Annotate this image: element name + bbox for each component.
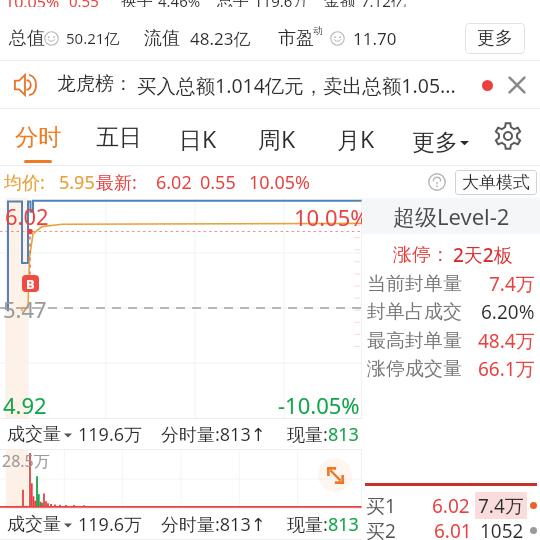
staticText: 119.6万 bbox=[254, 0, 308, 7]
staticText: 5.47 bbox=[3, 294, 47, 324]
button[interactable]: Settings bbox=[494, 122, 522, 150]
staticText: -10.05% bbox=[278, 390, 360, 420]
staticText: 6.02 bbox=[156, 170, 192, 195]
staticText: 6.02 bbox=[5, 201, 49, 231]
button[interactable]: 成交量 bbox=[7, 513, 72, 536]
staticText: 现量: bbox=[287, 422, 328, 447]
button[interactable]: Close bbox=[505, 73, 529, 97]
button[interactable]: 更多 bbox=[465, 23, 525, 54]
staticText: 6.01 bbox=[434, 518, 472, 540]
staticText: 换手 bbox=[121, 0, 153, 7]
staticText: 6.02 bbox=[432, 493, 470, 519]
staticText: 更多 bbox=[477, 27, 513, 50]
staticText: 6.20% bbox=[481, 299, 535, 325]
staticText: 动 bbox=[313, 24, 323, 37]
staticText: 1052 bbox=[480, 518, 524, 540]
button[interactable]: 大单模式 bbox=[455, 170, 537, 195]
staticText: 买入总额1.014亿元，卖出总额1.05... bbox=[137, 72, 456, 99]
staticText: 7.4万 bbox=[489, 271, 535, 297]
staticText: 总值 bbox=[9, 27, 45, 50]
staticText: 现量: bbox=[287, 512, 328, 537]
staticText: 28.5万 bbox=[2, 450, 50, 472]
button[interactable]: 更多 bbox=[404, 123, 477, 162]
staticText: 0.55 bbox=[69, 0, 99, 7]
button[interactable]: 买1 bbox=[362, 492, 540, 519]
staticText: 分时量:813↑ bbox=[161, 512, 266, 537]
button[interactable]: Help bbox=[428, 173, 446, 191]
button[interactable]: 月K bbox=[325, 118, 387, 170]
staticText: 成交量 bbox=[7, 513, 61, 536]
staticText: 119.6万 bbox=[78, 422, 143, 447]
staticText: 119.6万 bbox=[78, 512, 143, 537]
staticText: 813 bbox=[328, 422, 359, 447]
button[interactable]: 买2 bbox=[362, 517, 540, 540]
staticText: 大单模式 bbox=[462, 172, 530, 193]
staticText: 50.21亿 bbox=[66, 28, 120, 48]
other: News bbox=[13, 73, 37, 97]
button[interactable]: 周K bbox=[246, 118, 308, 170]
staticText: 成交量 bbox=[7, 423, 61, 446]
staticText: 周K bbox=[258, 123, 296, 154]
staticText: 流值 bbox=[144, 27, 180, 50]
staticText: B bbox=[26, 275, 35, 292]
staticText: 分时 bbox=[15, 123, 61, 152]
staticText: 日K bbox=[179, 123, 217, 154]
staticText: 10.05% bbox=[294, 202, 369, 232]
staticText: 813 bbox=[328, 512, 359, 537]
staticText: 5.95 bbox=[59, 170, 95, 195]
staticText: 当前封单量 bbox=[367, 272, 462, 296]
button[interactable]: 日K bbox=[167, 118, 229, 170]
button[interactable]: 分时 bbox=[3, 118, 73, 168]
staticText: 2天2板 bbox=[453, 242, 513, 268]
staticText: 最高封单量 bbox=[367, 329, 462, 353]
staticText: 48.4万 bbox=[478, 328, 535, 354]
staticText: 月K bbox=[337, 123, 375, 154]
staticText: 66.1万 bbox=[478, 356, 535, 382]
staticText: 封单占成交 bbox=[367, 300, 462, 324]
staticText: 10.05% bbox=[249, 170, 310, 195]
button[interactable]: 成交量 bbox=[7, 423, 72, 446]
staticText: 7.12亿 bbox=[361, 0, 406, 7]
staticText: 五日 bbox=[96, 123, 142, 152]
staticText: 市盈 bbox=[278, 27, 314, 50]
staticText: 11.70 bbox=[353, 27, 397, 50]
button[interactable]: 五日 bbox=[84, 118, 154, 168]
staticText: 分时量:813↑ bbox=[161, 422, 266, 447]
staticText: 总手 bbox=[217, 0, 249, 7]
staticText: 4.92 bbox=[3, 390, 47, 420]
staticText: 龙虎榜： bbox=[57, 72, 133, 96]
staticText: 最新: bbox=[96, 170, 137, 195]
staticText: 涨停成交量 bbox=[367, 357, 462, 381]
staticText: 买1 bbox=[366, 493, 396, 519]
staticText: 买2 bbox=[366, 518, 396, 540]
staticText: 48.23亿 bbox=[190, 27, 251, 50]
staticText: 7.4万 bbox=[478, 493, 524, 518]
staticText: 10.05% bbox=[5, 0, 60, 7]
button[interactable]: News bbox=[0, 61, 540, 109]
staticText: 4.46% bbox=[158, 0, 201, 7]
staticText: 更多 bbox=[412, 128, 458, 157]
staticText: 超级Level-2 bbox=[393, 201, 510, 231]
staticText: 0.55 bbox=[200, 170, 236, 195]
staticText: 均价: bbox=[4, 170, 45, 195]
button[interactable]: Fullscreen bbox=[318, 458, 352, 492]
staticText: 金额 bbox=[324, 0, 356, 7]
staticText: 涨停： bbox=[393, 243, 450, 267]
